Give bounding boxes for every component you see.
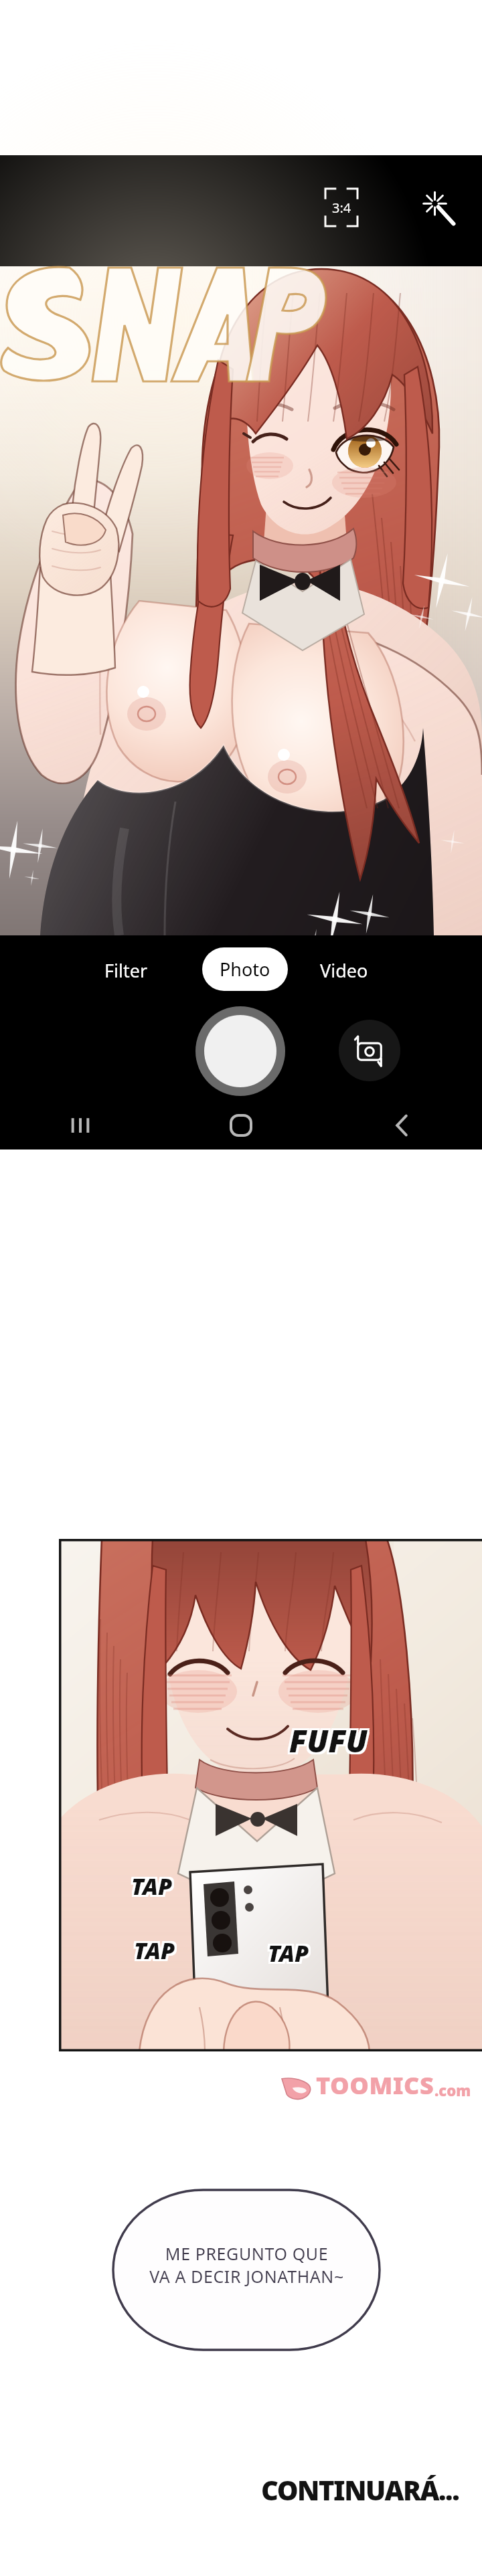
staticText: TAP <box>134 1937 175 1968</box>
staticText: TAP <box>268 1936 309 1966</box>
staticText: TAP <box>134 1933 175 1964</box>
staticText: FUFU <box>289 1718 368 1760</box>
staticText: FUFU <box>287 1720 366 1762</box>
button[interactable]: Photo <box>202 947 288 991</box>
staticText: TAP <box>136 1933 177 1964</box>
staticText: TAP <box>270 1936 311 1966</box>
staticText: TAP <box>129 1869 171 1900</box>
button[interactable]: Recent apps <box>0 1101 161 1149</box>
staticText: FUFU <box>289 1722 368 1764</box>
staticText: TAP <box>129 1873 171 1904</box>
staticText: FUFU <box>291 1720 370 1762</box>
button[interactable]: Shutter <box>195 1006 285 1096</box>
staticText: TAP <box>268 1940 309 1970</box>
staticText: TAP <box>131 1869 173 1900</box>
staticText: TAP <box>136 1935 177 1966</box>
button[interactable]: Magic filter <box>414 185 462 233</box>
staticText: CONTINUARÁ... <box>261 2472 459 2508</box>
staticText: Video <box>320 958 368 983</box>
staticText: TAP <box>131 1873 173 1904</box>
staticText: FUFU <box>291 1718 370 1760</box>
staticText: FUFU <box>291 1722 370 1764</box>
staticText: TAP <box>132 1933 173 1964</box>
staticText: TAP <box>131 1871 173 1902</box>
staticText: ME PREGUNTO QUE VA A DECIR JONATHAN~ <box>149 2242 344 2288</box>
staticText: TAP <box>133 1869 175 1900</box>
staticText: TAP <box>132 1935 173 1966</box>
staticText: FUFU <box>287 1718 366 1760</box>
staticText: TAP <box>266 1936 307 1966</box>
staticText: FUFU <box>287 1722 366 1764</box>
staticText: TAP <box>133 1873 175 1904</box>
button[interactable]: Filter <box>94 950 159 991</box>
button[interactable]: Back <box>321 1101 482 1149</box>
staticText: TAP <box>268 1938 309 1968</box>
staticText: 3:4 <box>332 199 351 217</box>
staticText: TAP <box>136 1937 177 1968</box>
staticText: TAP <box>134 1935 175 1966</box>
staticText: TAP <box>133 1871 175 1902</box>
staticText: Filter <box>104 958 148 983</box>
staticText: TAP <box>270 1940 311 1970</box>
staticText: TAP <box>132 1937 173 1968</box>
staticText: TAP <box>270 1938 311 1968</box>
staticText: TAP <box>266 1938 307 1968</box>
button[interactable]: Aspect ratio 3:4 <box>317 183 366 232</box>
staticText: Photo <box>220 957 270 982</box>
button[interactable]: Home <box>161 1101 321 1149</box>
staticText: TOOMICS <box>316 2069 434 2102</box>
button[interactable]: Video <box>309 950 379 991</box>
staticText: FUFU <box>289 1720 368 1762</box>
staticText: TAP <box>129 1871 171 1902</box>
staticText: .com <box>434 2080 471 2100</box>
button[interactable]: Switch camera <box>339 1020 400 1081</box>
staticText: TAP <box>266 1940 307 1970</box>
